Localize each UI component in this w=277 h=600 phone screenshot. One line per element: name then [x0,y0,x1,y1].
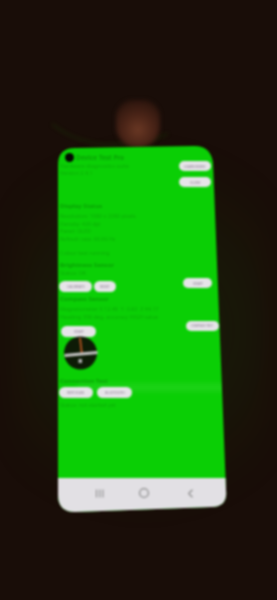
staticText: START [74,329,84,334]
staticText: Resolution: 1080 x 2280 pixels [60,212,136,219]
button[interactable]: RESET [94,281,116,292]
staticText: Status: OK [60,269,87,276]
staticText: Refresh rate: 60.00 Hz [60,235,116,242]
button[interactable]: COMPASS TEST [186,321,219,331]
staticText: CLOSE [190,180,201,185]
staticText: BLUETOOTH [105,390,125,395]
staticText: LEARN MORE [184,164,206,169]
button[interactable]: BLUETOOTH [97,387,132,398]
button[interactable]: START [183,278,212,288]
staticText: Device Test Pro [76,153,125,162]
staticText: Version 2.4.1 [60,169,93,176]
staticText: Hardware diagnostics suite [60,162,129,169]
staticText: WIFI SCAN [67,390,85,395]
staticText: CALIBRATE [67,284,85,289]
staticText: Brightness Sensor [60,261,115,269]
staticText: Display Status [60,202,103,210]
button[interactable]: Recent apps [86,480,112,506]
staticText: Density: 420 dpi [60,220,101,227]
button[interactable]: CALIBRATE [59,281,92,292]
staticText: START [193,281,203,286]
button[interactable]: Back [177,480,203,506]
staticText: COMPASS TEST [191,324,214,328]
button[interactable]: WIFI SCAN [59,387,93,398]
staticText: RESET [100,284,110,289]
staticText: Heading 358 deg, accuracy HIGH value [60,313,159,320]
button[interactable]: START [61,326,96,337]
staticText: Magnetometer X 12.48 Y -3.82 Z 44.17 [60,305,159,312]
staticText: Connection Test [60,377,108,385]
staticText: Compass Sensor [60,295,109,303]
staticText: Panel: OLED [60,227,91,234]
button[interactable]: Home [131,480,157,506]
button[interactable]: CLOSE [179,177,211,187]
staticText: Status: not started yet [60,401,116,408]
button[interactable]: LEARN MORE [179,161,211,171]
staticText: Colour test running [60,249,110,256]
